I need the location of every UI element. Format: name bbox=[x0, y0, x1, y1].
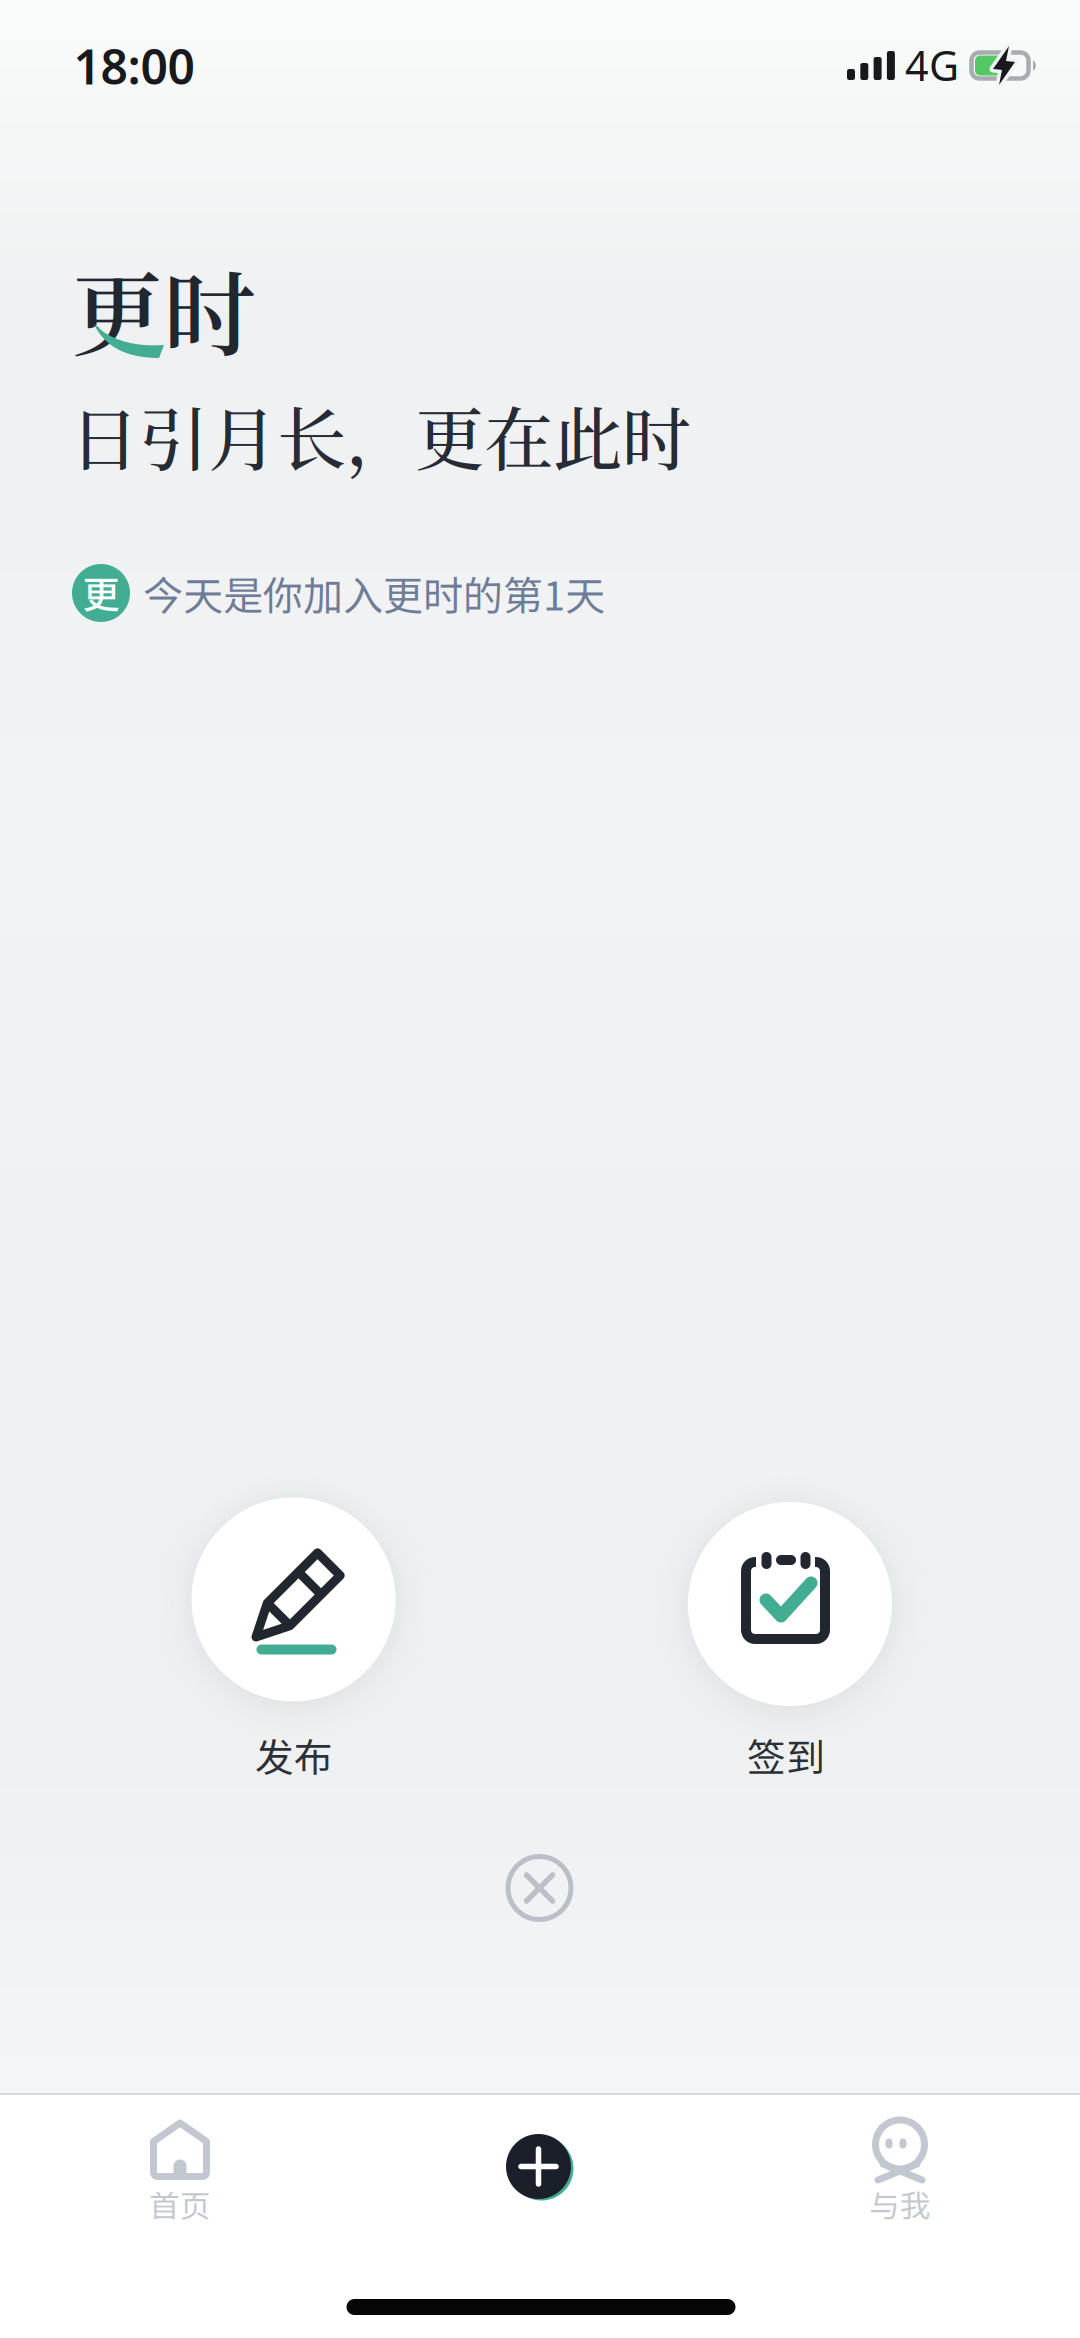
button[interactable]: 与我 bbox=[860, 2105, 940, 2225]
staticText: 与我 bbox=[869, 2182, 931, 2226]
staticText: 首页 bbox=[149, 2182, 211, 2226]
staticText: 更 bbox=[82, 565, 119, 619]
button[interactable]: 首页 bbox=[140, 2105, 220, 2225]
staticText: 日引月长，更在此时 bbox=[70, 385, 691, 485]
staticText: 更时 bbox=[71, 242, 255, 375]
staticText: 今天是你加入更时的第1天 bbox=[143, 564, 605, 622]
button[interactable]: 关闭 bbox=[507, 1856, 571, 1920]
staticText: 发布 bbox=[255, 1727, 333, 1783]
staticText: 4G bbox=[905, 38, 959, 92]
staticText: 18:00 bbox=[73, 34, 194, 98]
button[interactable]: 发布 bbox=[191, 1497, 395, 1775]
button[interactable]: 签到 bbox=[688, 1502, 892, 1780]
button[interactable]: 发布 bbox=[503, 2131, 575, 2203]
staticText: 签到 bbox=[747, 1727, 825, 1783]
